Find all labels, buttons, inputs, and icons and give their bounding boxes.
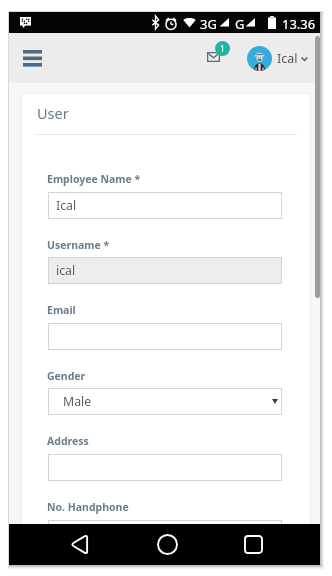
staticText: Ical [277,50,298,67]
button[interactable]: Home [149,524,185,565]
staticText: ical [56,262,76,279]
staticText: Address [47,434,89,448]
button[interactable] [48,454,282,481]
button[interactable]: Male [48,388,282,415]
staticText: Ical [56,197,77,214]
staticText: User [37,103,69,123]
button[interactable]: Recent apps [235,524,271,565]
staticText: 13.36 [282,15,316,33]
staticText: Employee Name * [47,172,141,186]
button[interactable]: Open navigation menu [13,40,52,76]
button[interactable]: ical [48,257,282,284]
button[interactable]: Ical [48,192,282,219]
staticText: Male [63,393,92,410]
button[interactable] [48,520,282,547]
staticText: Email [47,303,76,317]
staticText: No. Handphone [47,500,129,514]
staticText: Username * [47,238,110,252]
button[interactable]: Account menu [243,40,319,76]
staticText: 1 [220,43,225,55]
staticText: 3G [200,15,217,33]
button[interactable]: Messages [200,43,228,73]
staticText: Gender [47,369,86,383]
button[interactable] [48,323,282,350]
staticText: G [235,15,245,33]
button[interactable]: Back [61,524,97,565]
